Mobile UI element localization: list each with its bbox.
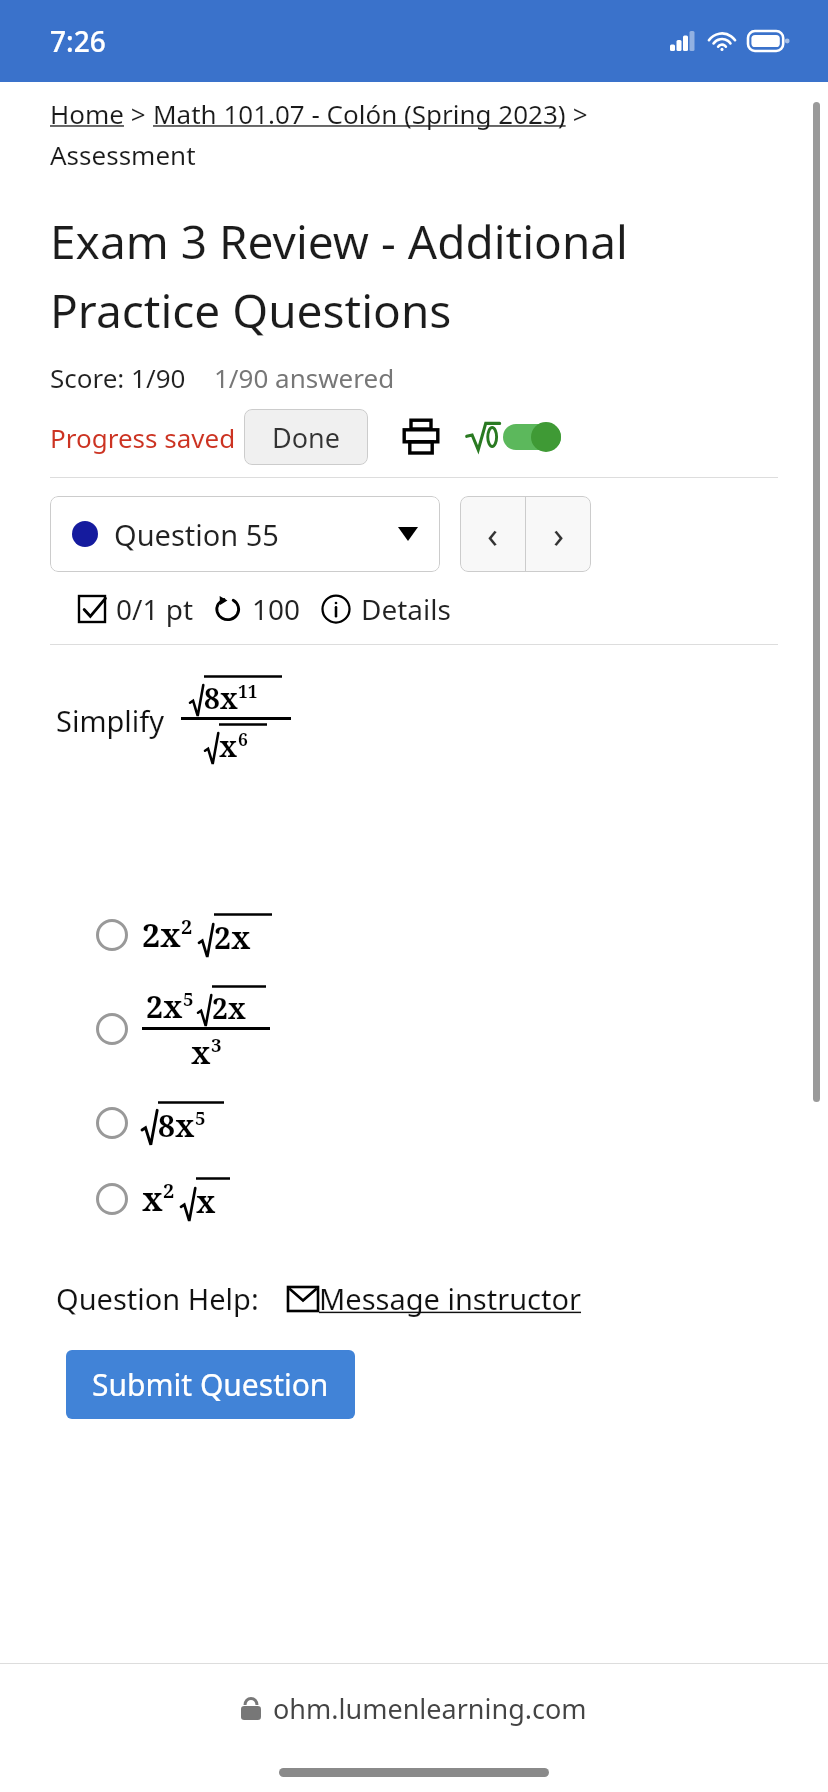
staticText: 1/90 answered [214,360,395,395]
staticText: 3 [211,1032,222,1057]
staticText: Message instructor [319,1279,582,1318]
button[interactable]: Details [321,590,451,628]
staticText: Score: 1/90 [50,360,186,395]
staticText: 11 [238,679,258,703]
staticText: Assessment [50,137,196,172]
button[interactable]: Submit Question [66,1350,355,1419]
staticText: x [191,1032,211,1073]
button[interactable]: Home [50,96,124,131]
staticText: › [553,510,565,559]
staticText: 2 [181,913,193,940]
staticText: > [124,96,153,131]
button[interactable]: Print [398,414,444,460]
button[interactable]: Previous question [460,496,525,572]
staticText: Submit Question [92,1364,329,1405]
button[interactable]: 2x [96,979,270,1079]
staticText: 2 [163,1177,175,1204]
button[interactable]: 8x [96,1091,224,1155]
staticText: 8x [204,679,238,717]
staticText: x [142,1177,163,1221]
staticText: Details [361,590,451,628]
button[interactable]: x [96,1167,230,1231]
staticText: 7:26 [50,22,106,60]
staticText: 2x [142,913,181,957]
staticText: Question 55 [114,515,279,554]
staticText: 5 [183,986,194,1011]
staticText: Done [272,419,340,455]
button[interactable]: Message instructor [287,1279,582,1318]
staticText: 2x [212,989,246,1027]
button[interactable]: Next question [526,496,591,572]
staticText: Progress saved [50,420,236,455]
button[interactable]: Math view toggle [466,420,561,454]
button[interactable]: Question 55 [50,496,440,572]
button[interactable]: 2x [96,903,272,967]
staticText: 8x [158,1105,195,1146]
staticText: > [566,96,588,131]
staticText: x [219,727,238,765]
staticText: 100 [252,590,301,628]
staticText: 0/1 pt [116,590,194,628]
staticText: 6 [238,727,248,751]
staticText: Simplify [56,701,165,740]
staticText: 2x [146,986,183,1027]
button[interactable]: Done [244,409,368,465]
staticText: Exam 3 Review - Additional [50,210,628,273]
staticText: 5 [195,1105,206,1130]
staticText: Practice Questions [50,279,452,342]
button[interactable]: Math 101.07 - Colón (Spring 2023) [153,96,566,131]
staticText: x [196,1181,216,1222]
staticText: 2x [214,917,251,958]
staticText: ohm.lumenlearning.com [273,1690,587,1727]
staticText: ‹ [487,510,499,559]
staticText: Question Help: [56,1279,259,1318]
